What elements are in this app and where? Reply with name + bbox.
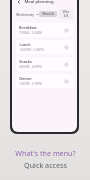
staticText: Wednesday bbox=[16, 12, 34, 16]
button[interactable]: Breakfast bbox=[16, 23, 73, 37]
staticText: 7:00AM - 9:30AM bbox=[19, 31, 42, 35]
button[interactable]: Settings for Breakfast bbox=[63, 27, 70, 34]
button[interactable]: Lunch bbox=[16, 40, 73, 54]
button[interactable]: Back bbox=[16, 0, 22, 5]
button[interactable]: Wednesday bbox=[16, 11, 39, 17]
staticText: What's the menu? bbox=[15, 148, 76, 158]
staticText: Breakfast bbox=[19, 25, 37, 30]
staticText: Lunch bbox=[19, 42, 31, 47]
button[interactable]: Dinner bbox=[16, 74, 73, 88]
button[interactable]: Snacks bbox=[16, 57, 73, 71]
staticText: Meal planning bbox=[24, 0, 54, 5]
button[interactable]: Week B bbox=[59, 9, 73, 19]
button[interactable]: Settings for Lunch bbox=[63, 44, 70, 51]
staticText: 12:00PM - 1:45PM bbox=[19, 48, 44, 52]
button[interactable]: Settings for Snacks bbox=[63, 61, 70, 68]
staticText: Quick access bbox=[24, 160, 67, 170]
button[interactable]: Week A bbox=[39, 11, 57, 17]
staticText: Dinner bbox=[19, 76, 32, 81]
button[interactable]: Settings for Dinner bbox=[63, 78, 70, 85]
staticText: Week A bbox=[42, 12, 54, 16]
staticText: Week B bbox=[62, 10, 70, 18]
staticText: Snacks bbox=[19, 59, 32, 64]
staticText: 7:30PM - 9:15PM bbox=[19, 82, 42, 86]
staticText: 4:00PM - 5:00PM bbox=[19, 65, 42, 69]
